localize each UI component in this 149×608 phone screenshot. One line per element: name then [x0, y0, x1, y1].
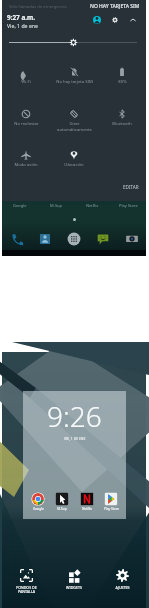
- button[interactable]: Netflix: [77, 492, 97, 511]
- button[interactable]: 9:26: [23, 391, 126, 519]
- button[interactable]: User account: [90, 13, 104, 27]
- staticText: 80%: [118, 79, 127, 85]
- button[interactable]: message: [94, 230, 111, 247]
- button[interactable]: AJUSTES: [98, 560, 146, 608]
- button[interactable]: Collapse: [126, 13, 140, 27]
- button[interactable]: No hay tarjeta SIM: [50, 62, 98, 102]
- button[interactable]: Brightness: [2, 35, 146, 50]
- button[interactable]: Settings: [108, 13, 122, 27]
- staticText: Play Store: [104, 507, 119, 511]
- button[interactable]: Ubicación: [50, 145, 98, 185]
- staticText: Netflix: [86, 203, 99, 208]
- staticText: Google: [13, 203, 27, 208]
- button[interactable]: FONDOS DE PANTALLA: [2, 560, 50, 608]
- staticText: Wi-Fi: [21, 79, 31, 85]
- staticText: Vie, 1 de ene: [7, 22, 38, 29]
- button[interactable]: M-Sup: [52, 492, 72, 511]
- staticText: VIE, 1 DE ENE: [64, 436, 86, 441]
- button[interactable]: camera: [123, 230, 140, 247]
- staticText: Sólo llamadas de emergencia: [9, 4, 67, 10]
- button[interactable]: Modo avión: [2, 145, 50, 185]
- staticText: No molestar: [14, 121, 39, 127]
- staticText: Play Store: [119, 203, 138, 208]
- button[interactable]: Bluetooth: [98, 104, 146, 144]
- staticText: 9:26: [47, 397, 102, 435]
- button[interactable]: Play Store: [101, 492, 121, 511]
- staticText: M-Sup: [57, 507, 67, 511]
- staticText: Bluetooth: [112, 121, 132, 127]
- staticText: 9:27 a.m.: [7, 13, 36, 22]
- staticText: EDITAR: [123, 184, 139, 190]
- button[interactable]: No molestar: [2, 104, 50, 144]
- staticText: WIDGETS: [66, 585, 82, 590]
- button[interactable]: 80%: [98, 62, 146, 102]
- button[interactable]: phone: [8, 230, 25, 247]
- button[interactable]: Google: [28, 492, 48, 511]
- staticText: Modo avión: [14, 162, 38, 168]
- button[interactable]: EDITAR: [116, 183, 146, 191]
- staticText: Netflix: [82, 507, 92, 511]
- button[interactable]: contacts: [36, 230, 53, 247]
- button[interactable]: Wi-Fi: [2, 62, 50, 102]
- button[interactable]: WIDGETS: [50, 560, 98, 608]
- button[interactable]: drawer: [65, 230, 82, 247]
- staticText: M-Sup: [50, 203, 63, 208]
- staticText: No hay tarjeta SIM: [56, 79, 93, 85]
- button[interactable]: Girar automáticamente: [50, 104, 98, 144]
- staticText: Ubicación: [64, 162, 84, 168]
- staticText: FONDOS DE PANTALLA: [16, 585, 37, 595]
- staticText: AJUSTES: [115, 585, 130, 590]
- staticText: NO HAY TARJETA SIM: [90, 3, 140, 10]
- staticText: Google: [33, 507, 44, 511]
- staticText: Girar automáticamente: [57, 121, 92, 132]
